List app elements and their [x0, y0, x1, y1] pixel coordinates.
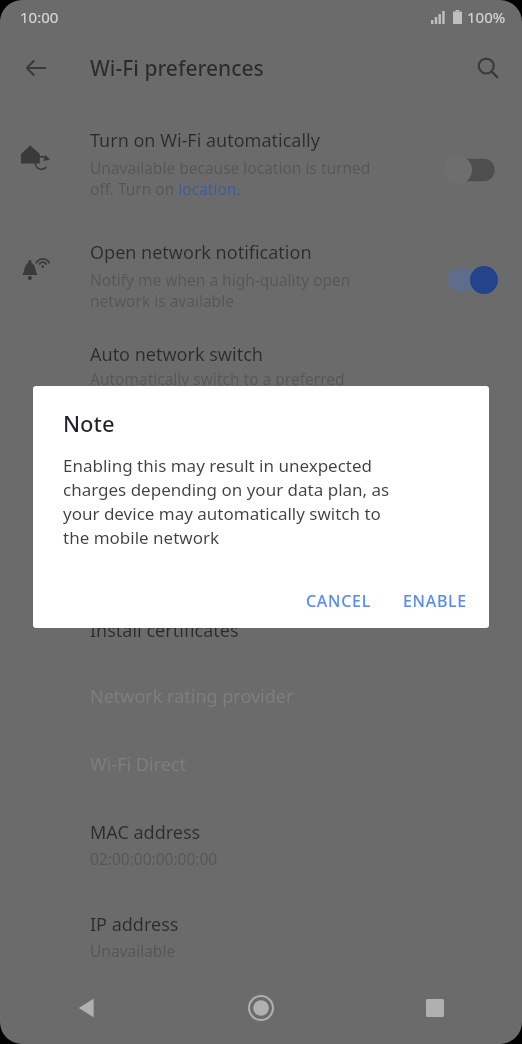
staticText: ENABLE	[403, 590, 467, 612]
staticText: Open network notification	[90, 240, 312, 265]
staticText: 02:00:00:00:00:00	[90, 848, 218, 869]
staticText: Turn on Wi-Fi automatically	[90, 128, 320, 153]
button[interactable]: Search	[464, 44, 512, 92]
button[interactable]: Toggle on	[444, 266, 498, 294]
staticText: Wi-Fi Direct	[90, 752, 186, 777]
button[interactable]: Install certificates	[0, 604, 522, 662]
button[interactable]: Open network notification	[0, 228, 522, 326]
staticText: Network rating provider	[90, 684, 294, 709]
staticText: Unavailable	[90, 940, 176, 961]
staticText: Enabling this may result in unexpected c…	[63, 454, 390, 549]
button[interactable]: Turn on Wi-Fi automatically	[0, 112, 522, 210]
staticText: 10:00	[20, 7, 59, 27]
staticText: Note	[63, 408, 115, 438]
staticText: Unavailable because location is turned o…	[90, 157, 371, 200]
staticText: 100%	[467, 7, 506, 27]
staticText: Automatically switch to a preferred	[90, 368, 345, 389]
button[interactable]: CANCEL	[292, 580, 385, 622]
button[interactable]: IP address	[0, 900, 522, 972]
button[interactable]: Home	[174, 980, 348, 1044]
button[interactable]: Toggle off	[444, 156, 498, 184]
staticText: Auto network switch	[90, 342, 263, 367]
button[interactable]: Back	[0, 980, 174, 1044]
staticText: Notify me when a high-quality open netwo…	[90, 269, 351, 312]
button[interactable]: Back	[12, 44, 60, 92]
button[interactable]: Auto network switch	[0, 338, 522, 398]
button[interactable]: Recent apps	[348, 980, 522, 1044]
button[interactable]: ENABLE	[389, 580, 481, 622]
staticText: MAC address	[90, 820, 201, 845]
staticText: Wi-Fi preferences	[90, 54, 264, 83]
staticText: CANCEL	[306, 590, 371, 612]
staticText: IP address	[90, 912, 179, 937]
staticText: Install certificates	[90, 618, 239, 643]
button[interactable]: MAC address	[0, 808, 522, 880]
